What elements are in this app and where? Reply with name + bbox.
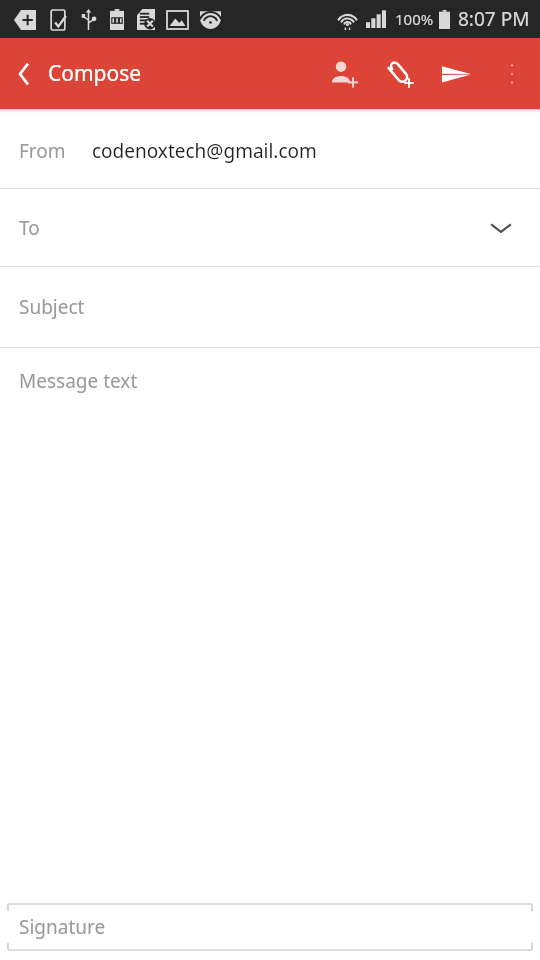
button[interactable]: Attach file bbox=[372, 38, 428, 109]
button[interactable]: Send bbox=[428, 38, 484, 109]
staticText: Signature bbox=[19, 914, 106, 940]
button[interactable]: Message text bbox=[0, 348, 540, 894]
staticText: 8:07 PM bbox=[458, 6, 530, 32]
staticText: codenoxtech@gmail.com bbox=[92, 138, 317, 164]
button[interactable]: Signature bbox=[0, 894, 540, 960]
button[interactable]: Show Cc and Bcc bbox=[484, 211, 518, 245]
button[interactable]: More options bbox=[484, 38, 540, 109]
staticText: From bbox=[19, 138, 66, 164]
button[interactable]: Add recipient bbox=[316, 38, 372, 109]
button[interactable]: From bbox=[0, 113, 540, 188]
button[interactable]: Subject bbox=[0, 267, 540, 347]
button[interactable]: Compose bbox=[0, 38, 316, 109]
button[interactable]: To bbox=[0, 189, 540, 266]
staticText: Message text bbox=[19, 368, 138, 394]
staticText: 100% bbox=[395, 9, 434, 29]
staticText: To bbox=[19, 215, 40, 241]
staticText: Subject bbox=[19, 294, 85, 320]
staticText: Compose bbox=[48, 59, 142, 88]
